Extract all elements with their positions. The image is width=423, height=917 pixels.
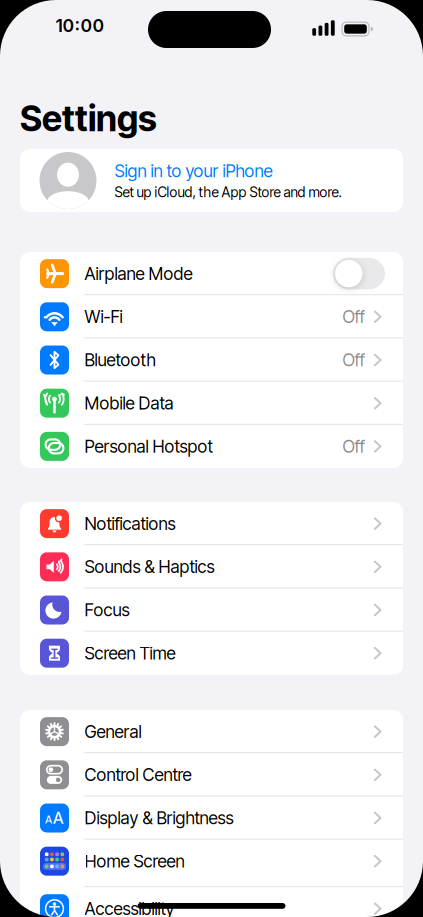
button[interactable]: General xyxy=(20,710,403,753)
staticText: Control Centre xyxy=(84,764,191,785)
button[interactable]: Personal Hotspot xyxy=(20,425,403,468)
staticText: Screen Time xyxy=(84,643,175,664)
staticText: Display & Brightness xyxy=(84,807,233,828)
staticText: A xyxy=(45,813,52,826)
button[interactable]: Wi-Fi xyxy=(20,295,403,338)
button[interactable]: Mobile Data xyxy=(20,382,403,425)
staticText: Wi-Fi xyxy=(84,306,122,327)
button[interactable]: Notifications xyxy=(20,502,403,545)
staticText: Settings xyxy=(20,97,157,140)
staticText: 10:00 xyxy=(55,15,104,36)
button[interactable]: Airplane Mode xyxy=(20,252,403,295)
staticText: Bluetooth xyxy=(84,349,155,370)
staticText: A xyxy=(53,808,64,828)
staticText: Notifications xyxy=(84,513,175,534)
button[interactable]: Sign in to your iPhone xyxy=(20,149,403,212)
staticText: Off xyxy=(342,436,364,457)
staticText: Mobile Data xyxy=(84,393,173,414)
button[interactable]: Accessibility xyxy=(20,887,403,917)
button[interactable]: Control Centre xyxy=(20,753,403,796)
button[interactable]: Focus xyxy=(20,588,403,632)
button[interactable]: Home Screen xyxy=(20,840,403,887)
button[interactable]: Sounds & Haptics xyxy=(20,545,403,588)
button[interactable]: A xyxy=(20,796,403,840)
staticText: Set up iCloud, the App Store and more. xyxy=(114,184,341,201)
staticText: Home Screen xyxy=(84,851,184,872)
staticText: Airplane Mode xyxy=(84,263,192,284)
staticText: Focus xyxy=(84,599,129,620)
staticText: General xyxy=(84,721,141,742)
staticText: Sounds & Haptics xyxy=(84,556,214,577)
button[interactable]: Screen Time xyxy=(20,632,403,675)
staticText: Off xyxy=(342,349,364,370)
staticText: Personal Hotspot xyxy=(84,436,212,457)
staticText: Off xyxy=(342,306,364,327)
button[interactable]: Bluetooth xyxy=(20,338,403,382)
staticText: Accessibility xyxy=(84,898,174,917)
staticText: Sign in to your iPhone xyxy=(114,160,272,181)
